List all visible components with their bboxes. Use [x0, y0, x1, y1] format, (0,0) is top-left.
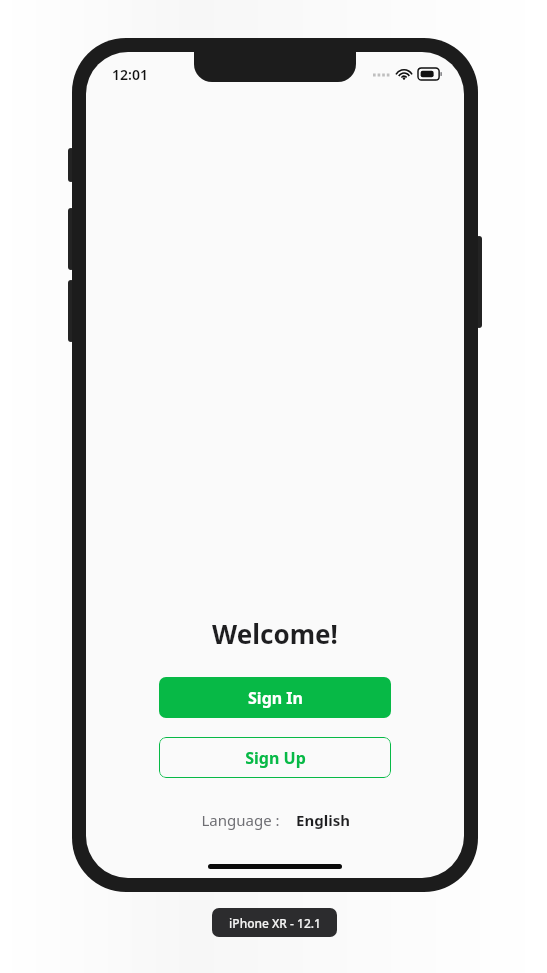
staticText: English [296, 810, 350, 830]
staticText: Language : [201, 810, 280, 830]
button[interactable]: Sign Up [159, 737, 391, 778]
button[interactable]: Sign In [159, 677, 391, 718]
staticText: Sign In [248, 687, 303, 709]
staticText: Sign Up [245, 747, 306, 769]
staticText: Welcome! [212, 616, 338, 651]
staticText: iPhone XR - 12.1 [229, 915, 321, 931]
button[interactable]: Language : [193, 806, 358, 834]
other: Home indicator [208, 864, 342, 869]
staticText: 12:01 [112, 65, 148, 84]
